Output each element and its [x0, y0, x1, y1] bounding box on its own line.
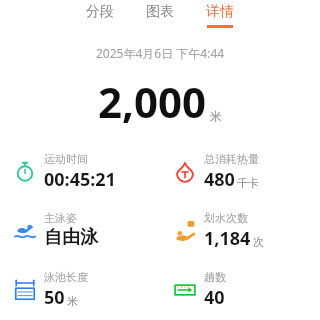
staticText: 划水次数	[204, 211, 248, 225]
button[interactable]: 详情	[200, 0, 240, 31]
staticText: 40	[204, 285, 225, 310]
staticText: 2,000	[98, 73, 207, 130]
button[interactable]: 图表	[140, 0, 180, 31]
staticText: 趟数	[204, 270, 226, 284]
staticText: 00:45:21	[44, 167, 116, 192]
other: Pool length	[14, 279, 36, 301]
staticText: 主泳姿	[44, 211, 77, 225]
staticText: 千卡	[237, 176, 259, 190]
other: Lap count	[174, 279, 196, 301]
button[interactable]: Stroke count	[160, 209, 320, 253]
staticText: 自由泳	[44, 226, 98, 249]
staticText: 米	[210, 109, 222, 124]
staticText: 图表	[146, 3, 174, 21]
other: Calories burned	[174, 161, 196, 183]
button[interactable]: Main swim stroke	[0, 209, 160, 251]
staticText: 详情	[206, 3, 234, 21]
other: Stroke count	[174, 220, 196, 242]
staticText: 分段	[86, 3, 114, 21]
button[interactable]: 分段	[80, 0, 120, 31]
button[interactable]: Pool length	[0, 268, 160, 312]
button[interactable]: Calories burned	[160, 150, 320, 194]
staticText: 总消耗热量	[204, 152, 259, 166]
staticText: 次	[253, 235, 264, 249]
button[interactable]: Exercise time	[0, 150, 160, 194]
other: Exercise time	[14, 161, 36, 183]
staticText: 泳池长度	[44, 270, 88, 284]
other: Main swim stroke	[14, 219, 36, 241]
staticText: 运动时间	[44, 152, 88, 166]
button[interactable]: Lap count	[160, 268, 320, 312]
staticText: 50	[44, 285, 65, 310]
staticText: 2025年4月6日 下午4:44	[96, 45, 225, 61]
staticText: 米	[67, 294, 78, 308]
staticText: 1,184	[204, 226, 251, 251]
staticText: 480	[204, 167, 235, 192]
